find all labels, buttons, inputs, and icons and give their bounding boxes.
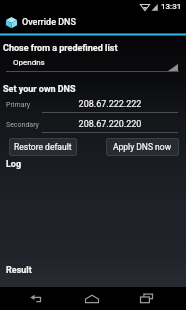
button[interactable]: 208.67.220.220 [42,118,178,133]
staticText: Primary [6,101,31,109]
button[interactable]: Opendns [6,57,182,72]
staticText: Opendns [13,58,45,67]
staticText: Secondary [6,121,39,129]
staticText: Apply DNS now [113,142,172,152]
button[interactable]: Recent apps [125,287,167,310]
staticText: Override DNS [22,17,76,28]
button[interactable]: Home [71,287,113,310]
button[interactable]: Apply DNS now [106,138,179,156]
button[interactable]: 208.67.222.222 [42,98,178,113]
staticText: Set your own DNS [3,84,76,95]
staticText: Result [6,265,32,276]
staticText: Restore default [14,142,72,152]
button[interactable]: Restore default [9,138,77,156]
staticText: Log [6,159,22,170]
staticText: Chose from a predefined list [3,43,118,54]
button[interactable]: Back [16,287,58,310]
staticText: 13:31 [161,2,182,11]
staticText: 208.67.220.220 [42,119,178,130]
staticText: 208.67.222.222 [42,99,178,110]
